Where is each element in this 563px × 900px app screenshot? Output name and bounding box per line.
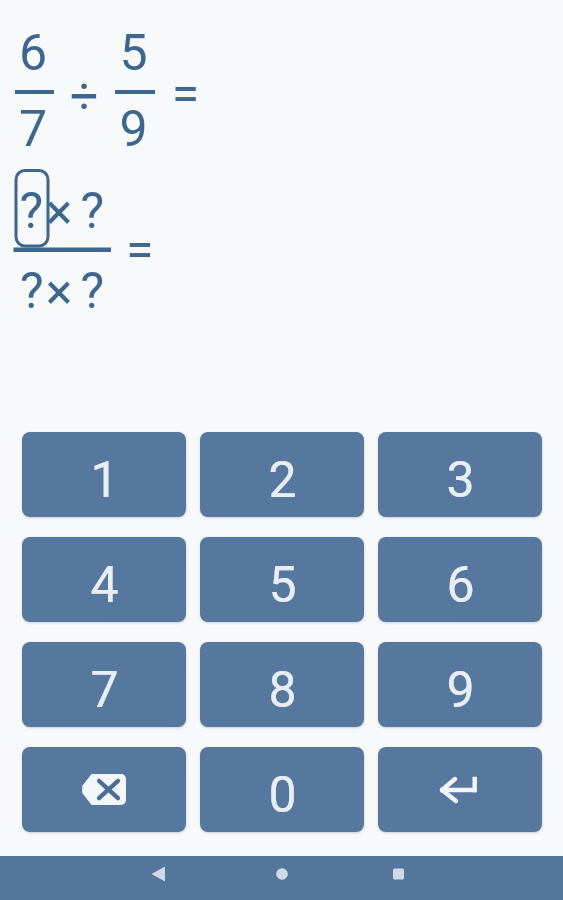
staticText: 4 bbox=[90, 556, 119, 615]
button[interactable]: 4 bbox=[22, 537, 186, 622]
button[interactable] bbox=[22, 747, 186, 832]
button[interactable]: 2 bbox=[200, 432, 364, 517]
button[interactable]: 8 bbox=[200, 642, 364, 727]
staticText: 2 bbox=[268, 451, 297, 510]
button[interactable]: 9 bbox=[378, 642, 542, 727]
staticText: 3 bbox=[446, 451, 475, 510]
staticText: 0 bbox=[268, 766, 297, 825]
button[interactable] bbox=[128, 856, 188, 900]
button[interactable]: 6 bbox=[378, 537, 542, 622]
button[interactable] bbox=[252, 856, 312, 900]
button[interactable] bbox=[369, 856, 429, 900]
staticText: 9 bbox=[446, 661, 475, 720]
staticText: 5 bbox=[268, 556, 297, 615]
staticText: 7 bbox=[90, 661, 119, 720]
staticText: 1 bbox=[90, 451, 119, 510]
staticText: 6 bbox=[446, 556, 475, 615]
button[interactable]: 1 bbox=[22, 432, 186, 517]
button[interactable]: 0 bbox=[200, 747, 364, 832]
button[interactable]: 3 bbox=[378, 432, 542, 517]
button[interactable]: 5 bbox=[200, 537, 364, 622]
button[interactable] bbox=[378, 747, 542, 832]
button[interactable]: 7 bbox=[22, 642, 186, 727]
staticText: 8 bbox=[268, 661, 297, 720]
